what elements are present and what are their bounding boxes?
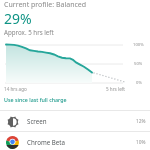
staticText: Screen xyxy=(27,117,47,125)
staticText: 29% xyxy=(4,9,32,28)
staticText: 10% xyxy=(136,139,146,146)
other: Screen xyxy=(7,116,19,128)
staticText: Chrome Beta xyxy=(27,138,66,146)
staticText: 0% xyxy=(136,80,142,86)
staticText: 100% xyxy=(133,42,144,48)
staticText: Approx. 5 hrs left xyxy=(4,28,54,36)
staticText: 12% xyxy=(136,118,146,125)
staticText: 14 hrs ago xyxy=(4,86,27,92)
staticText: Current profile: Balanced xyxy=(4,0,87,10)
button[interactable]: Screen xyxy=(0,111,150,131)
staticText: 50% xyxy=(134,61,143,67)
other: Chrome Beta xyxy=(6,136,19,149)
button[interactable]: Use since last full charge xyxy=(4,96,67,103)
button[interactable]: Chrome Beta xyxy=(0,132,150,150)
staticText: 5 hrs left xyxy=(106,86,125,92)
